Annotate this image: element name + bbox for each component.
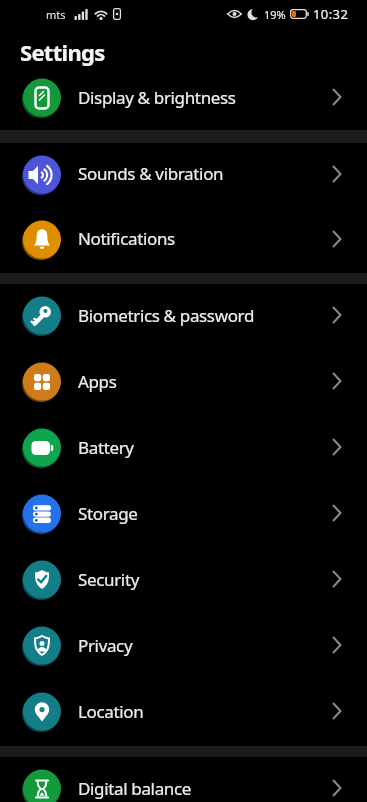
staticText: 19% [264, 7, 286, 22]
staticText: Security [78, 568, 140, 591]
staticText: Digital balance [78, 777, 192, 800]
staticText: Battery [78, 436, 134, 459]
staticText: Storage [78, 502, 138, 525]
staticText: Location [78, 700, 144, 723]
staticText: Sounds & vibration [78, 162, 224, 185]
button[interactable]: Storage [0, 482, 367, 548]
staticText: Display & brightness [78, 86, 236, 109]
staticText: mts [46, 7, 66, 22]
button[interactable]: Display & brightness [0, 68, 367, 130]
staticText: Apps [78, 370, 117, 393]
staticText: 10:32 [313, 5, 349, 23]
button[interactable]: Digital balance [0, 757, 367, 802]
staticText: Notifications [78, 227, 175, 250]
staticText: Biometrics & password [78, 304, 255, 327]
button[interactable]: Biometrics & password [0, 284, 367, 350]
button[interactable]: Apps [0, 350, 367, 416]
button[interactable]: Location [0, 680, 367, 746]
button[interactable]: Sounds & vibration [0, 143, 367, 208]
staticText: Privacy [78, 634, 133, 657]
button[interactable]: Security [0, 548, 367, 614]
staticText: Settings [20, 37, 105, 67]
button[interactable]: Battery [0, 416, 367, 482]
button[interactable]: Privacy [0, 614, 367, 680]
button[interactable]: Notifications [0, 208, 367, 273]
